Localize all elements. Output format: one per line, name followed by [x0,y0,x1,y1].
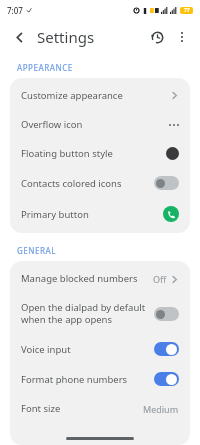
staticText: Customize appearance [21,89,164,102]
staticText: 7:07 [7,5,23,16]
staticText: Off [153,273,167,285]
button[interactable]: Customize appearance [10,81,190,110]
button[interactable]: Contacts colored icons [10,168,190,198]
staticText: Medium [143,403,179,415]
staticText: Floating button style [21,147,160,160]
button[interactable]: Format phone numbers [10,364,190,394]
staticText: Voice input [21,343,148,356]
staticText: Overflow icon [21,118,163,131]
staticText: GENERAL [17,245,57,256]
staticText: APPEARANCE [17,62,73,73]
button[interactable]: Font size [10,394,190,423]
button[interactable]: Toggle on [154,372,179,386]
staticText: Font size [21,402,137,415]
staticText: Format phone numbers [21,373,148,386]
button[interactable]: Toggle off [154,307,179,321]
staticText: Manage blocked numbers [21,272,147,285]
button[interactable]: Overflow icon [10,110,190,139]
button[interactable]: Toggle off [154,176,179,190]
button[interactable]: Toggle on [154,342,179,356]
button[interactable]: Back [6,24,32,50]
button[interactable]: Floating button style [10,139,190,168]
button[interactable]: Call history [144,24,170,50]
staticText: Open the dialpad by default when the app… [21,301,148,326]
button[interactable]: Primary button color [163,206,179,222]
button[interactable]: Manage blocked numbers [10,264,190,293]
button[interactable]: More options [170,25,194,49]
button[interactable]: Change date and time format [10,423,190,442]
staticText: Primary button [21,208,157,221]
button[interactable]: Voice input [10,334,190,364]
button[interactable]: Primary button [10,198,190,230]
staticText: Contacts colored icons [21,177,148,190]
button[interactable]: Open the dialpad by default when the app… [10,293,190,334]
staticText: 77 [184,7,190,14]
staticText: Settings [37,27,95,47]
